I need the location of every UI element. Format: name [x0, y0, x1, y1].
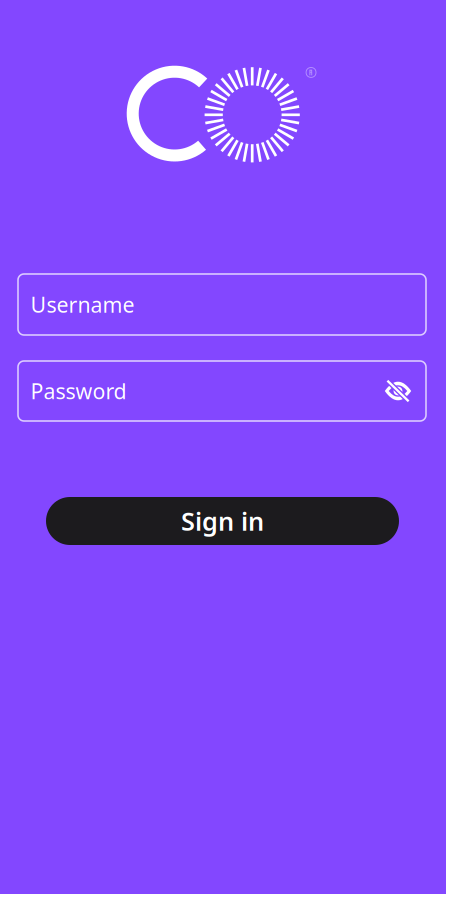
- button[interactable]: Username: [18, 274, 426, 335]
- staticText: Sign in: [181, 504, 264, 538]
- staticText: Password: [30, 377, 126, 405]
- staticText: Username: [30, 290, 134, 319]
- button[interactable]: Password: [18, 361, 426, 421]
- button[interactable]: Hide password: [384, 379, 412, 402]
- button[interactable]: Sign in: [46, 497, 399, 545]
